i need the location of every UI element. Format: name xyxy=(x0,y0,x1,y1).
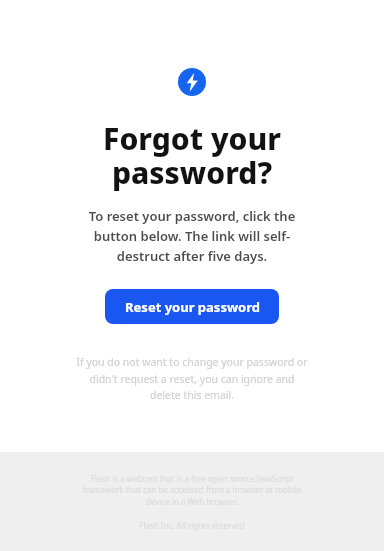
staticText: If you do not want to change your passwo… xyxy=(42,355,342,402)
staticText: To reset your password, click the button… xyxy=(42,207,342,265)
button[interactable]: Reset your password xyxy=(105,289,279,324)
staticText: Forgot your password? xyxy=(42,118,342,192)
other: Flash logo xyxy=(178,68,206,96)
staticText: Flash is a webtool that is a free open s… xyxy=(42,473,342,508)
staticText: Reset your password xyxy=(125,298,260,316)
staticText: Flash Inc. All rights reserved xyxy=(42,520,342,531)
